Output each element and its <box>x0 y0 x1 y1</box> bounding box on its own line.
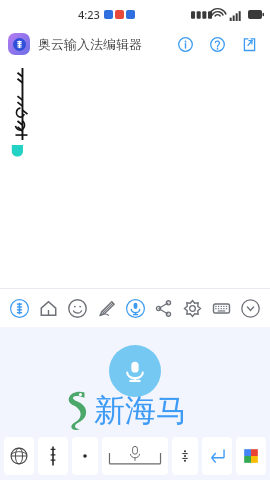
button[interactable]: Mongolian <box>38 437 68 475</box>
button[interactable]: More <box>172 437 198 475</box>
button[interactable]: Collapse <box>237 295 264 322</box>
button[interactable]: Voice input <box>122 295 149 322</box>
staticText: 奥云输入法编辑器 <box>38 36 142 52</box>
button[interactable]: Share <box>150 295 177 322</box>
button[interactable]: Enter <box>202 437 232 475</box>
button[interactable]: Handwriting <box>93 295 120 322</box>
button[interactable]: Dot <box>72 437 98 475</box>
button[interactable]: Input method <box>6 295 33 322</box>
button[interactable]: Language <box>4 437 34 475</box>
staticText: 4:23 <box>78 7 100 22</box>
button[interactable]: Space <box>102 437 168 475</box>
button[interactable]: Settings <box>179 295 206 322</box>
button[interactable]: Info <box>172 31 198 57</box>
button[interactable]: Voice input <box>109 345 161 397</box>
button[interactable]: Help <box>204 31 230 57</box>
staticText: 新海马 <box>94 391 187 430</box>
button[interactable]: Emoji <box>64 295 91 322</box>
button[interactable]: Keyboard <box>208 295 235 322</box>
button[interactable]: Share <box>236 31 262 57</box>
button[interactable]: Apps <box>236 437 266 475</box>
button[interactable]: Home <box>35 295 62 322</box>
